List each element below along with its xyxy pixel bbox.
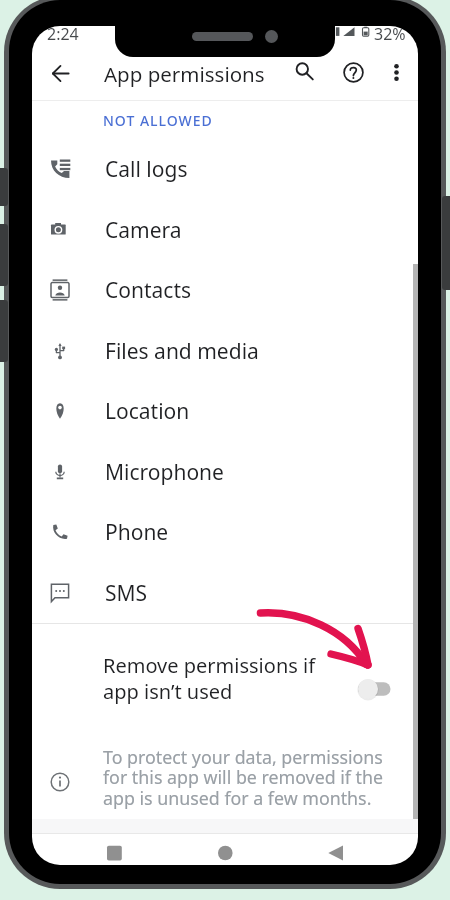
button[interactable]: More options [373, 49, 418, 95]
staticText: Call logs [105, 155, 188, 184]
staticText: Remove permissions if app isn’t used [103, 652, 316, 704]
button[interactable]: Location [32, 381, 418, 441]
staticText: Camera [105, 216, 182, 245]
button[interactable]: SMS [32, 563, 418, 623]
staticText: 32% [374, 26, 406, 45]
button[interactable]: Files and media [32, 321, 418, 381]
staticText: SMS [105, 579, 148, 608]
button[interactable]: Camera [32, 200, 418, 260]
button[interactable]: Search [282, 48, 329, 95]
staticText: Files and media [105, 337, 259, 366]
staticText: Microphone [105, 458, 224, 487]
staticText: Contacts [105, 276, 192, 305]
staticText: NOT ALLOWED [103, 111, 213, 130]
button[interactable]: Contacts [32, 260, 418, 320]
staticText: Location [105, 397, 190, 426]
button[interactable]: Call logs [32, 139, 418, 199]
button[interactable]: Help [330, 49, 377, 96]
staticText: App permissions [104, 60, 265, 88]
button[interactable]: Back [37, 50, 83, 96]
button[interactable]: Microphone [32, 442, 418, 502]
staticText: Phone [105, 518, 169, 547]
button[interactable]: Remove permissions if app isn’t used [32, 624, 418, 731]
button[interactable]: Phone [32, 502, 418, 562]
staticText: To protect your data, permissions for th… [103, 745, 384, 810]
button[interactable]: Remove permissions toggle [354, 676, 394, 702]
staticText: 2:24 [47, 26, 79, 45]
